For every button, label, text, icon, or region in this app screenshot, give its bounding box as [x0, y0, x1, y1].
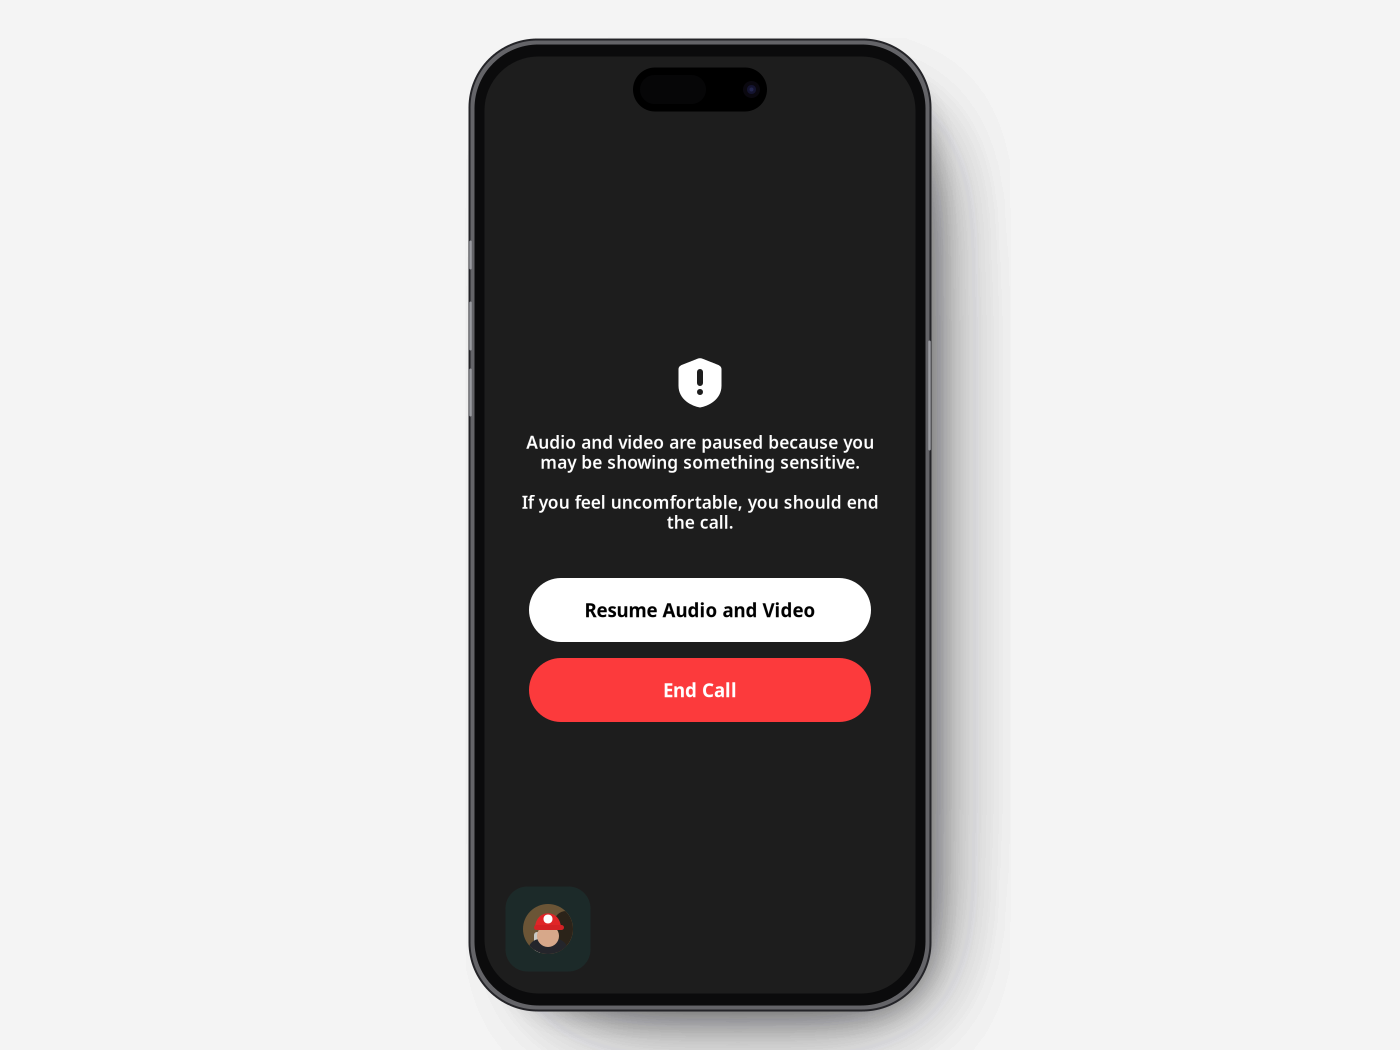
staticText: End Call [663, 678, 737, 702]
staticText: Audio and video are paused because you m… [521, 430, 878, 534]
button[interactable]: End Call [529, 658, 871, 722]
button[interactable]: Self view [505, 886, 590, 971]
staticText: Resume Audio and Video [584, 598, 815, 622]
button[interactable]: Resume Audio and Video [529, 578, 871, 642]
